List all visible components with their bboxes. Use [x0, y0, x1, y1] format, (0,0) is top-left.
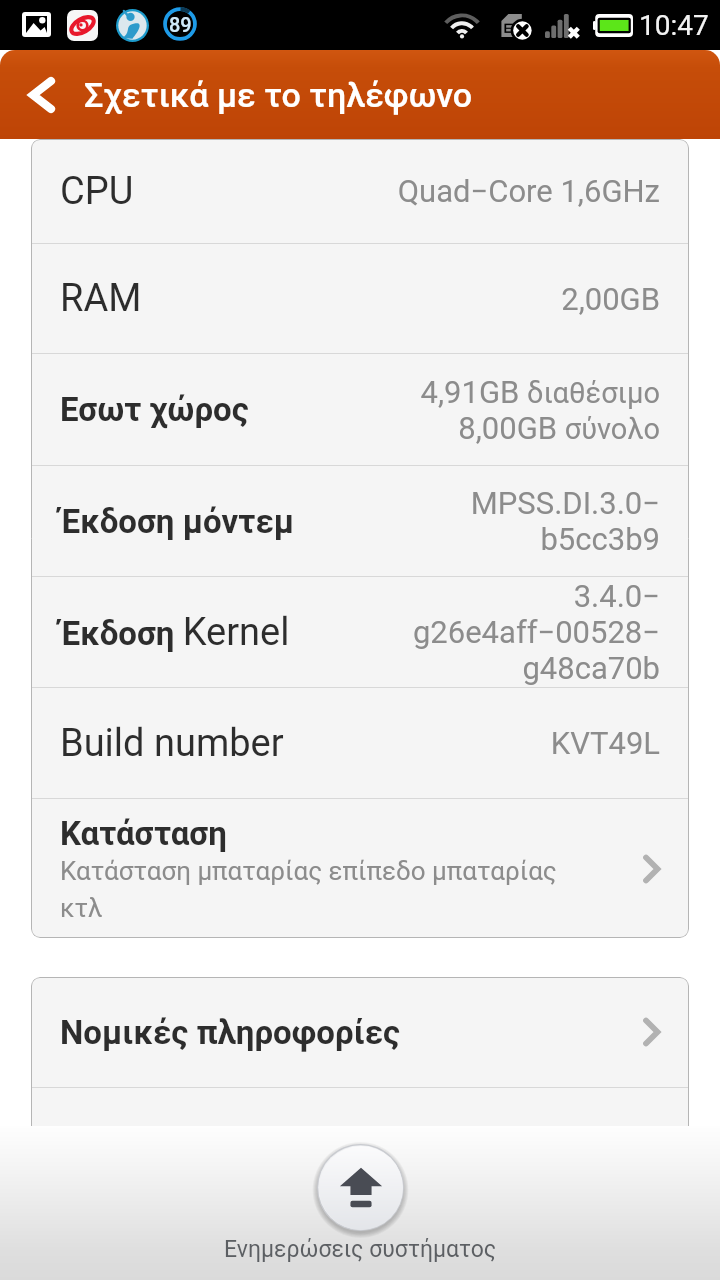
button[interactable]: Νομικές πληροφορίες	[31, 977, 689, 1087]
button[interactable]: Back	[0, 50, 76, 139]
staticText: 8,00GB σύνολο	[458, 410, 660, 446]
staticText: 3.4.0−	[573, 578, 660, 614]
staticText: Ενημερώσεις συστήματος	[224, 1236, 497, 1263]
staticText: g26e4aff−00528−	[412, 614, 660, 650]
staticText: 89	[169, 13, 192, 36]
staticText: Build number	[60, 721, 284, 766]
staticText: b5cc3b9	[540, 521, 660, 557]
button[interactable]: Έκδοση μόντεμ	[31, 466, 689, 576]
staticText: Εσωτ χώρος	[60, 390, 249, 429]
staticText: Σχετικά με το τηλέφωνο	[84, 75, 473, 115]
staticText: Κατάσταση μπαταρίας επίπεδο μπαταρίας κτ…	[60, 856, 604, 923]
button[interactable]: Εσωτ χώρος	[31, 354, 689, 465]
staticText: Quad−Core 1,6GHz	[397, 173, 660, 209]
staticText: g48ca70b	[522, 650, 660, 686]
staticText: 4,91GB διαθέσιμο	[420, 374, 660, 410]
staticText: Έκδοση μόντεμ	[60, 502, 295, 541]
staticText: MPSS.DI.3.0−	[470, 485, 660, 521]
staticText: Νομικές πληροφορίες	[60, 1013, 401, 1052]
button[interactable]: Έκδοση Kernel	[31, 577, 689, 687]
button[interactable]: System updates	[317, 1144, 404, 1231]
staticText: Κατάσταση	[60, 814, 227, 853]
staticText: CPU	[60, 169, 134, 214]
button[interactable]: CPU	[31, 139, 689, 243]
button[interactable]: Build number	[31, 688, 689, 798]
staticText: 2,00GB	[561, 281, 660, 317]
staticText: KVT49L	[550, 725, 660, 761]
staticText: 10:47	[639, 9, 709, 42]
staticText: RAM	[60, 276, 142, 321]
button[interactable]: RAM	[31, 244, 689, 353]
staticText: Έκδοση Kernel	[60, 610, 290, 655]
button[interactable]: Κατάσταση	[31, 799, 689, 938]
